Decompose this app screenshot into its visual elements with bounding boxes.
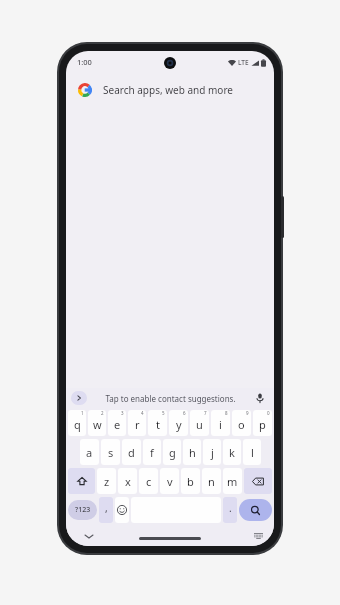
staticText: l: [251, 445, 254, 460]
staticText: 6: [183, 410, 186, 416]
staticText: 9: [246, 410, 249, 416]
button[interactable]: Shift: [68, 468, 95, 494]
button[interactable]: 2: [88, 410, 106, 436]
staticText: y: [176, 417, 182, 432]
button[interactable]: j: [203, 439, 221, 465]
staticText: 1:00: [77, 57, 92, 67]
staticText: h: [189, 445, 196, 460]
staticText: t: [156, 417, 160, 432]
staticText: o: [238, 417, 245, 432]
button[interactable]: h: [183, 439, 201, 465]
staticText: a: [86, 445, 93, 460]
button[interactable]: 4: [128, 410, 146, 436]
button[interactable]: ,: [99, 497, 113, 523]
button[interactable]: c: [139, 468, 158, 494]
button[interactable]: x: [118, 468, 137, 494]
staticText: u: [196, 417, 203, 432]
button[interactable]: 3: [108, 410, 126, 436]
button[interactable]: Switch keyboard: [252, 530, 264, 542]
staticText: x: [125, 474, 131, 489]
button[interactable]: Expand suggestions: [71, 391, 87, 405]
button[interactable]: g: [163, 439, 181, 465]
button[interactable]: m: [223, 468, 242, 494]
staticText: 7: [204, 410, 207, 416]
button[interactable]: 7: [190, 410, 209, 436]
button[interactable]: n: [202, 468, 221, 494]
staticText: g: [169, 445, 176, 460]
staticText: .: [229, 501, 232, 515]
button[interactable]: 8: [211, 410, 230, 436]
staticText: 0: [267, 410, 270, 416]
staticText: 3: [121, 410, 124, 416]
staticText: w: [93, 417, 102, 432]
button[interactable]: v: [160, 468, 179, 494]
button[interactable]: 0: [253, 410, 272, 436]
button[interactable]: Search: [239, 499, 272, 521]
staticText: ,: [105, 501, 108, 515]
button[interactable]: 6: [169, 410, 188, 436]
staticText: LTE: [238, 58, 249, 67]
button[interactable]: Hide keyboard: [82, 529, 96, 543]
button[interactable]: s: [101, 439, 120, 465]
staticText: 4: [141, 410, 144, 416]
staticText: i: [219, 417, 222, 432]
button[interactable]: Backspace: [244, 468, 272, 494]
button[interactable]: z: [97, 468, 116, 494]
button[interactable]: b: [181, 468, 200, 494]
staticText: 2: [101, 410, 104, 416]
staticText: z: [104, 474, 110, 489]
staticText: b: [187, 474, 194, 489]
staticText: n: [208, 474, 215, 489]
staticText: d: [128, 445, 135, 460]
button[interactable]: a: [80, 439, 99, 465]
staticText: j: [211, 445, 214, 460]
staticText: s: [108, 445, 114, 460]
button[interactable]: ?123: [68, 500, 97, 520]
staticText: r: [135, 417, 140, 432]
staticText: f: [150, 445, 154, 460]
button[interactable]: Tap to enable contact suggestions.: [105, 393, 236, 404]
staticText: ?123: [75, 505, 91, 515]
button[interactable]: l: [243, 439, 261, 465]
staticText: k: [229, 445, 235, 460]
button[interactable]: 5: [148, 410, 167, 436]
staticText: q: [74, 417, 81, 432]
button[interactable]: Search apps, web and more: [66, 73, 274, 107]
staticText: 1: [81, 410, 84, 416]
staticText: 8: [225, 410, 228, 416]
staticText: 5: [162, 410, 165, 416]
button[interactable]: k: [223, 439, 241, 465]
button[interactable]: f: [143, 439, 161, 465]
button[interactable]: d: [122, 439, 141, 465]
button[interactable]: Voice input: [253, 391, 267, 405]
button[interactable]: 1: [68, 410, 86, 436]
button[interactable]: 9: [232, 410, 251, 436]
staticText: v: [167, 474, 173, 489]
staticText: p: [259, 417, 266, 432]
staticText: e: [114, 417, 121, 432]
button[interactable]: Emoji: [115, 497, 129, 523]
staticText: Search apps, web and more: [103, 83, 233, 97]
staticText: m: [227, 474, 238, 489]
button[interactable]: .: [223, 497, 237, 523]
staticText: c: [146, 474, 152, 489]
